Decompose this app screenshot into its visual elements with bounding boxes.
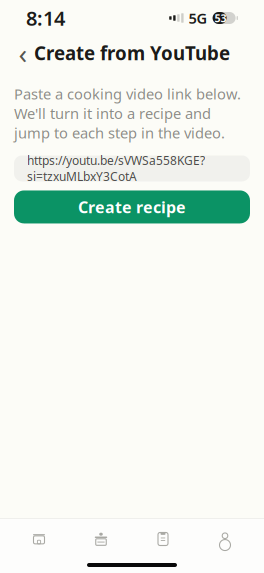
button[interactable]: Shopping list: [70, 519, 132, 559]
button[interactable]: Back: [9, 39, 37, 67]
button[interactable]: https://youtu.be/sVWSa558KGE?si=tzxuMLbx…: [14, 155, 250, 181]
button[interactable]: Home: [8, 519, 70, 559]
staticText: https://youtu.be/sVWSa558KGE?si=tzxuMLbx…: [27, 152, 205, 184]
staticText: 5G: [189, 8, 208, 28]
staticText: 53: [215, 11, 227, 25]
staticText: Create recipe: [78, 196, 186, 217]
button[interactable]: Profile: [194, 519, 256, 559]
staticText: Paste a cooking video link below. We'll …: [14, 84, 241, 142]
staticText: ‹: [18, 34, 27, 72]
button[interactable]: Create recipe: [14, 190, 250, 223]
staticText: 8:14: [26, 5, 65, 31]
staticText: Create from YouTube: [34, 41, 230, 65]
button[interactable]: Recipes: [132, 519, 194, 559]
